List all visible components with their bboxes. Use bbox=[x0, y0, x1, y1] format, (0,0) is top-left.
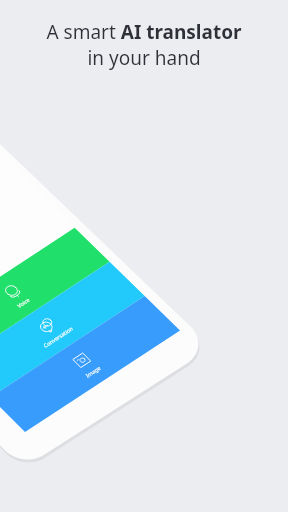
staticText: in your hand bbox=[87, 45, 201, 71]
staticText: A smart AI translator bbox=[46, 19, 242, 45]
